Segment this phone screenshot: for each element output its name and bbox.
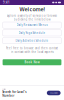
staticText: Search for Local's xyxy=(2,90,26,94)
button[interactable]: CALL NOW xyxy=(47,91,61,95)
staticText: Welcome! xyxy=(19,6,44,13)
staticText: Daily Restaurant Menus xyxy=(16,23,47,27)
button[interactable]: Daily Yoga Schedule xyxy=(3,30,61,36)
staticText: by clicking the links below xyxy=(13,18,50,21)
staticText: Explore a variety of services or browse xyxy=(6,14,57,17)
staticText: Feel free to browse and then contact xyxy=(6,46,58,50)
button[interactable]: Daily Activities Schedule xyxy=(3,38,61,44)
button[interactable]: Daily Restaurant Menus xyxy=(3,22,61,28)
staticText: Book Now xyxy=(24,60,39,64)
staticText: Daily Yoga Schedule xyxy=(18,31,45,35)
button[interactable]: Book Now xyxy=(3,59,61,65)
staticText: Daily Activities Schedule xyxy=(15,39,48,42)
staticText: CALL NOW xyxy=(50,92,57,94)
staticText: Number xyxy=(2,94,14,97)
staticText: 9:41 xyxy=(3,1,10,4)
staticText: in contact with the local experts xyxy=(10,50,53,54)
staticText: Calling xyxy=(2,88,6,90)
